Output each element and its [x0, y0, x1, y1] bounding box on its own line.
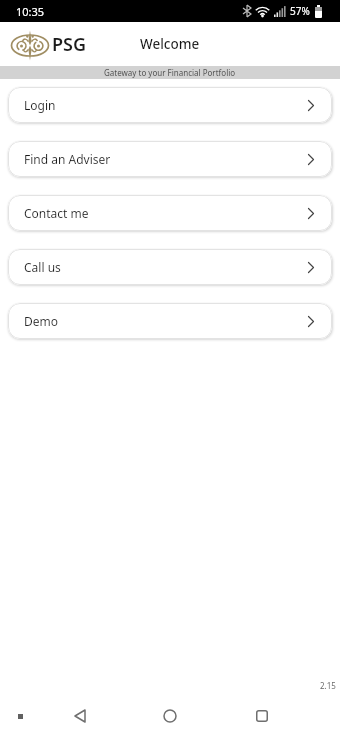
button[interactable]: Demo [8, 303, 332, 339]
staticText: Login [24, 97, 56, 113]
staticText: 57% [290, 4, 310, 18]
button[interactable]: Contact me [8, 195, 332, 231]
staticText: Contact me [24, 205, 89, 221]
staticText: 2.15 [320, 680, 336, 691]
staticText: Find an Adviser [24, 151, 111, 167]
button[interactable] [232, 695, 292, 737]
staticText: Gateway to your Financial Portfolio [104, 67, 236, 78]
button[interactable]: Call us [8, 249, 332, 285]
button[interactable] [140, 695, 200, 737]
staticText: PSG [52, 32, 87, 57]
staticText: 10:35 [16, 4, 45, 19]
button[interactable]: Login [8, 87, 332, 123]
staticText: Welcome [140, 35, 200, 53]
button[interactable]: Find an Adviser [8, 141, 332, 177]
button[interactable] [50, 695, 110, 737]
staticText: Call us [24, 259, 61, 275]
staticText: Demo [24, 313, 59, 329]
